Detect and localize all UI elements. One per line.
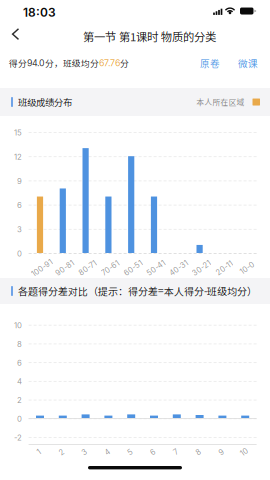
staticText: 5 bbox=[128, 447, 133, 456]
staticText: 15 bbox=[14, 128, 22, 137]
staticText: 8 bbox=[196, 447, 201, 456]
staticText: 18:03 bbox=[23, 5, 56, 19]
staticText: 3 bbox=[82, 447, 87, 456]
staticText: 2 bbox=[59, 447, 64, 456]
staticText: 微课 bbox=[238, 56, 258, 70]
staticText: 9 bbox=[219, 447, 224, 456]
staticText: 6 bbox=[17, 358, 22, 367]
staticText: 100-91 bbox=[30, 263, 54, 272]
staticText: 3 bbox=[17, 225, 22, 234]
staticText: 90-81 bbox=[54, 263, 75, 272]
staticText: 10-0 bbox=[239, 263, 255, 272]
staticText: 1 bbox=[37, 447, 40, 456]
staticText: 4 bbox=[17, 377, 22, 386]
button[interactable]: 微课 bbox=[233, 52, 263, 74]
staticText: 6 bbox=[150, 447, 155, 456]
staticText: 12 bbox=[14, 152, 22, 162]
button[interactable]: Back bbox=[3, 23, 28, 45]
staticText: 4 bbox=[105, 447, 110, 456]
staticText: 分，班级均分 bbox=[45, 57, 99, 69]
staticText: 10 bbox=[240, 447, 248, 456]
staticText: 0 bbox=[17, 414, 22, 424]
staticText: 60-51 bbox=[123, 263, 144, 272]
staticText: 30-21 bbox=[191, 263, 212, 272]
staticText: 7 bbox=[174, 447, 178, 456]
staticText: 80-71 bbox=[78, 263, 98, 272]
staticText: 6 bbox=[17, 201, 22, 210]
staticText: 9 bbox=[17, 176, 22, 186]
staticText: 50-41 bbox=[145, 263, 166, 272]
staticText: 分 bbox=[120, 57, 129, 69]
staticText: 本人所在区域 bbox=[196, 96, 244, 108]
staticText: 0 bbox=[17, 249, 22, 258]
staticText: -2 bbox=[14, 433, 22, 442]
staticText: 班级成绩分布 bbox=[18, 95, 72, 109]
staticText: 第一节 第1课时 物质的分类 bbox=[83, 28, 216, 44]
staticText: 70-61 bbox=[100, 263, 120, 272]
staticText: 得分 bbox=[9, 57, 27, 69]
button[interactable]: 原卷 bbox=[195, 52, 225, 74]
staticText: 20-11 bbox=[215, 263, 234, 272]
staticText: 8 bbox=[17, 339, 22, 349]
staticText: 2 bbox=[17, 396, 22, 405]
staticText: 40-31 bbox=[168, 263, 189, 272]
staticText: 各题得分差对比（提示：得分差=本人得分-班级均分） bbox=[18, 284, 257, 298]
staticText: 94.0 bbox=[27, 58, 45, 68]
staticText: 67.76 bbox=[99, 58, 120, 68]
staticText: 10 bbox=[14, 321, 22, 330]
staticText: 原卷 bbox=[200, 56, 220, 70]
